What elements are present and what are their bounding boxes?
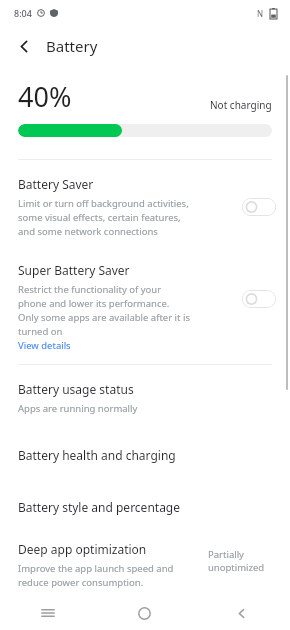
button[interactable]: Recent apps bbox=[0, 596, 96, 630]
button[interactable]: View details bbox=[18, 339, 71, 352]
button[interactable]: Battery usage status bbox=[0, 365, 290, 429]
button[interactable]: Super Battery Saver bbox=[0, 252, 290, 364]
staticText: N bbox=[257, 8, 264, 19]
button[interactable]: Back bbox=[193, 596, 290, 630]
staticText: 8:04 bbox=[14, 7, 32, 19]
staticText: Battery bbox=[46, 36, 98, 56]
staticText: Super Battery Saver bbox=[18, 262, 130, 278]
button[interactable]: Battery style and percentage bbox=[0, 481, 290, 533]
staticText: Limit or turn off background activities,… bbox=[18, 197, 189, 238]
button[interactable]: Toggle bbox=[242, 290, 276, 308]
staticText: Apps are running normally bbox=[18, 402, 138, 415]
button[interactable]: Back bbox=[6, 28, 42, 64]
staticText: Restrict the functionality of your phone… bbox=[18, 283, 190, 338]
staticText: Partially unoptimized bbox=[208, 548, 274, 574]
button[interactable]: Deep app optimization bbox=[0, 533, 290, 589]
button[interactable]: Battery health and charging bbox=[0, 429, 290, 481]
staticText: Battery style and percentage bbox=[18, 499, 181, 515]
button[interactable]: Toggle bbox=[242, 198, 276, 216]
staticText: Not charging bbox=[210, 98, 272, 112]
staticText: Battery usage status bbox=[18, 381, 134, 397]
staticText: Improve the app launch speed and reduce … bbox=[18, 562, 174, 589]
staticText: 40% bbox=[18, 78, 72, 115]
button[interactable]: Battery Saver bbox=[0, 160, 290, 252]
staticText: Battery health and charging bbox=[18, 447, 176, 463]
button[interactable]: Home bbox=[96, 596, 193, 630]
staticText: Battery Saver bbox=[18, 176, 94, 192]
staticText: Deep app optimization bbox=[18, 541, 147, 557]
